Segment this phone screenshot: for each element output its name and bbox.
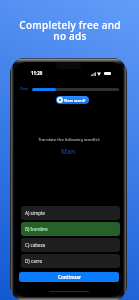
staticText: Translate the following word(s): (38, 137, 100, 143)
staticText: Completely free and no ads (19, 18, 121, 43)
button[interactable]: B) hombre (21, 222, 120, 236)
staticText: New word! (64, 98, 86, 103)
staticText: Continuar (58, 274, 81, 280)
staticText: B) hombre (25, 226, 48, 232)
button[interactable]: New word! (56, 96, 89, 104)
button[interactable]: C) cabeza (21, 238, 120, 252)
button[interactable]: D) carro (21, 254, 120, 268)
staticText: 11:20 (31, 70, 43, 76)
staticText: Man (61, 147, 76, 156)
button[interactable]: Close (20, 86, 29, 90)
staticText: C) cabeza (25, 242, 46, 248)
button[interactable]: A) simple (21, 206, 120, 220)
button[interactable]: Continuar (19, 272, 119, 282)
other: Wi-Fi (97, 72, 101, 76)
staticText: D) carro (25, 258, 43, 264)
staticText: A) simple (25, 210, 45, 216)
other: Signal strength (91, 72, 96, 76)
